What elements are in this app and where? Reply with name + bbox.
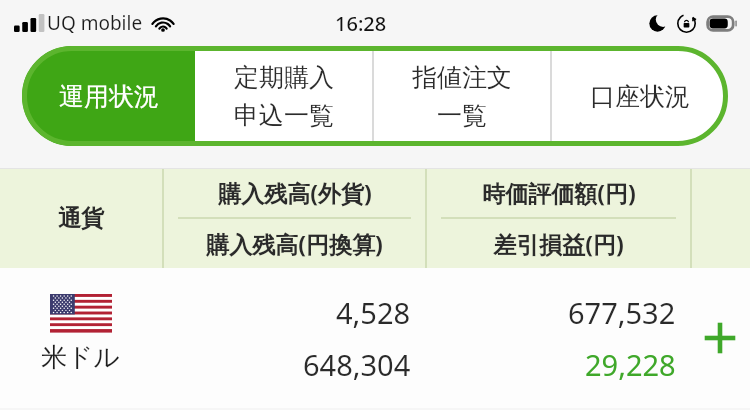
staticText: 時価評価額(円): [482, 177, 636, 208]
staticText: 運用状況: [59, 81, 159, 112]
staticText: 定期購入: [234, 62, 334, 93]
staticText: 差引損益(円): [493, 228, 624, 259]
staticText: 指値注文: [412, 62, 512, 93]
staticText: 購入残高(外貨): [218, 177, 372, 208]
button[interactable]: 定期購入: [195, 46, 372, 146]
staticText: 申込一覧: [234, 100, 334, 131]
staticText: 29,228: [585, 345, 676, 384]
staticText: 4,528: [336, 293, 411, 332]
button[interactable]: 指値注文: [374, 46, 550, 146]
button[interactable]: Add currency: [690, 268, 750, 408]
button[interactable]: 運用状況: [22, 46, 195, 146]
staticText: 一覧: [437, 100, 487, 131]
staticText: 通貨: [58, 204, 104, 233]
staticText: 口座状況: [590, 81, 690, 112]
button[interactable]: 口座状況: [552, 46, 728, 146]
staticText: 677,532: [568, 293, 676, 332]
staticText: UQ mobile: [47, 10, 143, 36]
staticText: 648,304: [303, 345, 411, 384]
staticText: 購入残高(円換算): [206, 228, 383, 259]
staticText: 16:28: [335, 10, 387, 37]
staticText: 米ドル: [41, 341, 121, 374]
